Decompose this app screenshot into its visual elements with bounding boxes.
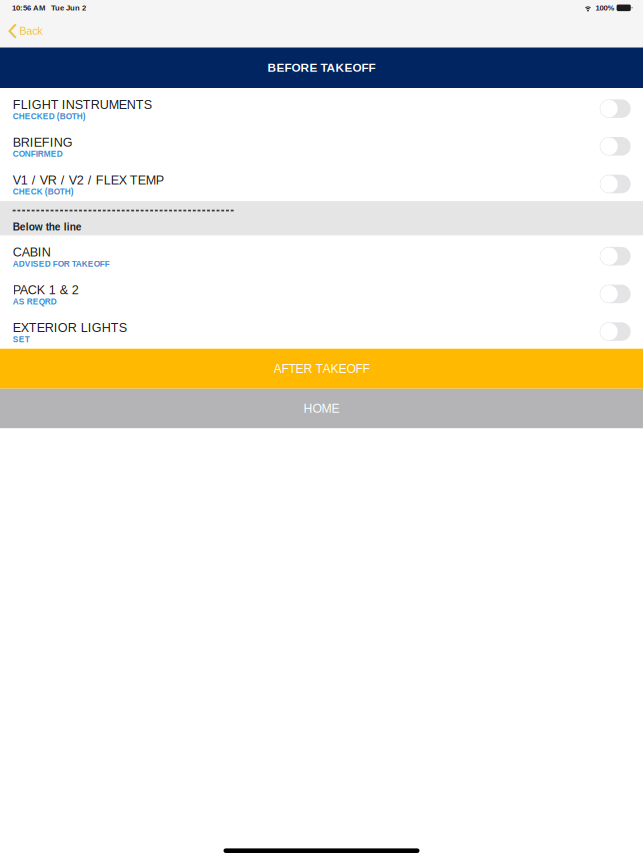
staticText: 100%: [595, 3, 614, 12]
button[interactable]: V1 / VR / V2 / FLEX TEMP: [0, 163, 643, 201]
staticText: EXTERIOR LIGHTS: [13, 321, 127, 335]
staticText: ADVISED FOR TAKEOFF: [13, 259, 110, 268]
button[interactable]: AFTER TAKEOFF: [0, 349, 643, 389]
button[interactable]: HOME: [0, 389, 643, 428]
button[interactable]: FLIGHT INSTRUMENTS: [0, 88, 643, 126]
staticText: HOME: [303, 402, 339, 415]
staticText: BRIEFING: [13, 135, 73, 149]
button[interactable]: CABIN: [0, 236, 643, 273]
staticText: CHECK (BOTH): [13, 187, 74, 196]
button[interactable]: Back: [0, 20, 52, 47]
staticText: CONFIRMED: [13, 149, 63, 159]
button[interactable]: BRIEFING: [0, 126, 643, 163]
staticText: Below the line: [13, 221, 82, 233]
staticText: AFTER TAKEOFF: [273, 362, 369, 375]
staticText: CHECKED (BOTH): [13, 112, 86, 121]
staticText: PACK 1 & 2: [13, 283, 79, 297]
staticText: SET: [13, 335, 30, 344]
staticText: Back: [19, 25, 42, 37]
staticText: CABIN: [13, 245, 51, 259]
staticText: V1 / VR / V2 / FLEX TEMP: [13, 173, 164, 187]
staticText: FLIGHT INSTRUMENTS: [13, 98, 152, 112]
staticText: 10:56 AM Tue Jun 2: [12, 3, 86, 12]
staticText: AS REQRD: [13, 297, 57, 306]
staticText: BEFORE TAKEOFF: [267, 61, 375, 74]
button[interactable]: EXTERIOR LIGHTS: [0, 311, 643, 349]
button[interactable]: PACK 1 & 2: [0, 273, 643, 311]
